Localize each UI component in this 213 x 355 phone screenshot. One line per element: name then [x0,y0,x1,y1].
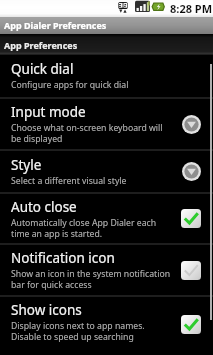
button[interactable]: Quick dial [0,55,213,97]
staticText: Choose what on-screen keyboard will be d… [11,122,163,145]
staticText: App Dialer Preferences [4,19,107,31]
staticText: Display icons next to app names. Disable… [11,320,145,343]
staticText: 8:28 PM [170,1,213,16]
staticText: App Preferences [4,39,78,51]
staticText: Select a different visual style [11,175,127,187]
button[interactable]: Unchecked [181,261,201,280]
button[interactable]: Checked [181,209,201,228]
button[interactable]: Notification icon [0,245,213,295]
staticText: Auto close [11,198,77,216]
staticText: Quick dial [11,60,74,78]
button[interactable]: Style [0,151,213,192]
button[interactable]: Auto close [0,194,213,243]
staticText: Configure apps for quick dial [11,79,129,91]
staticText: Input mode [11,103,86,121]
staticText: Show icons [11,301,82,319]
staticText: Show an icon in the system notification … [11,268,171,291]
staticText: Notification icon [11,249,115,267]
button[interactable]: Open list [182,115,201,134]
button[interactable]: Input mode [0,99,213,149]
button[interactable]: Open list [182,162,201,181]
staticText: Automatically close App Dialer each time… [11,217,157,240]
button[interactable]: Show icons [0,297,213,351]
staticText: Style [11,156,42,174]
button[interactable]: Checked [181,315,201,334]
